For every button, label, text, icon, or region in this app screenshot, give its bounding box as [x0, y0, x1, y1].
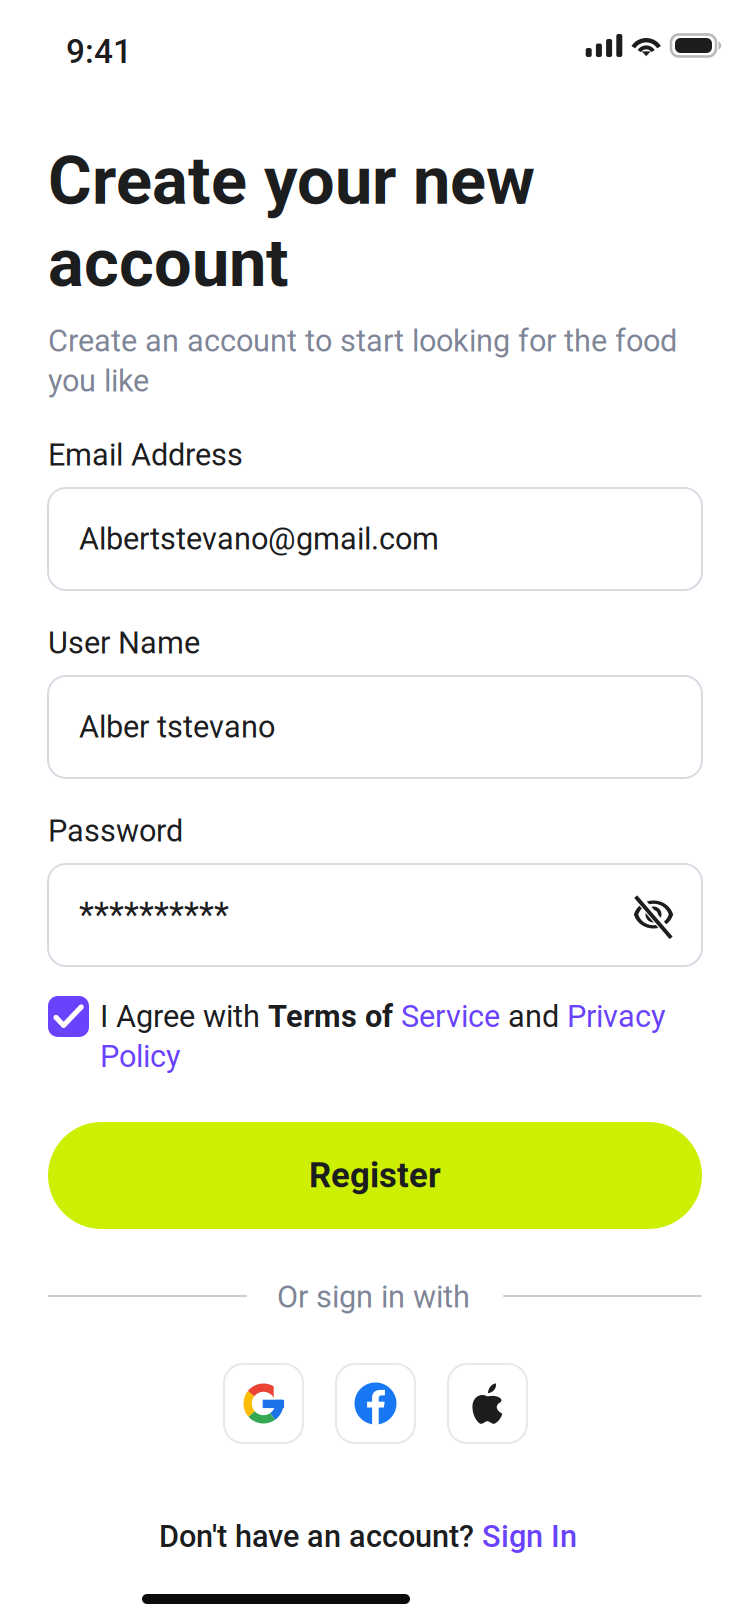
staticText: Create an account to start looking for t… — [48, 323, 677, 399]
staticText: Don't have an account? Sign In — [159, 1519, 577, 1554]
staticText: ********** — [79, 895, 229, 935]
button[interactable]: Sign in with Apple — [448, 1364, 527, 1443]
staticText: Albertstevano@gmail.com — [79, 521, 439, 557]
staticText: Alber tstevano — [79, 709, 275, 745]
button[interactable]: Sign in with Google — [224, 1364, 303, 1443]
button[interactable]: Register — [48, 1122, 702, 1229]
staticText: User Name — [48, 625, 200, 661]
staticText: Email Address — [48, 437, 243, 473]
button[interactable]: Don't have an account? Sign In — [159, 1519, 577, 1554]
button[interactable]: Sign in with Facebook — [336, 1364, 415, 1443]
button[interactable]: Alber tstevano — [48, 676, 702, 778]
staticText: Password — [48, 813, 183, 849]
button[interactable]: ********** — [48, 864, 702, 966]
staticText: Register — [309, 1155, 441, 1196]
button[interactable]: Agree to terms — [48, 996, 89, 1037]
button[interactable]: Albertstevano@gmail.com — [48, 488, 702, 590]
staticText: Or sign in with — [277, 1279, 470, 1315]
staticText: 9:41 — [66, 32, 132, 71]
staticText: Create your new account — [48, 142, 535, 302]
staticText: I Agree with Terms of Service and Privac… — [100, 999, 666, 1074]
